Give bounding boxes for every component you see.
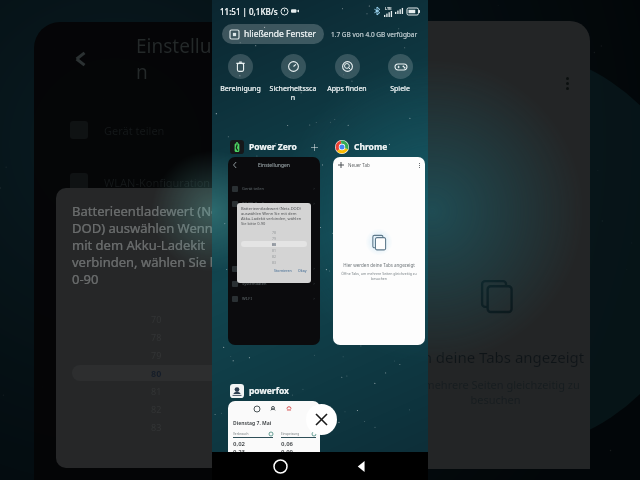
staticText: Batterieentladewert (Netz-DOD) auswählen… <box>72 202 240 288</box>
button[interactable]: Alle schließen <box>306 404 337 435</box>
staticText: m mehrere Seiten gleichzeitig zu besuche… <box>411 377 580 407</box>
button[interactable]: Spiele <box>375 52 425 96</box>
staticText: 82 <box>272 254 277 259</box>
staticText: Stornieren <box>274 268 292 273</box>
staticText: > <box>313 296 316 301</box>
staticText: 0,00 <box>281 448 294 456</box>
staticText: Öffne Tabs, um mehrere Seiten gleichzeit… <box>341 271 417 281</box>
button[interactable]: Zurück <box>347 452 375 480</box>
staticText: Gerät teilen <box>242 186 264 191</box>
button[interactable]: Bereinigung <box>215 52 265 96</box>
staticText: Batterieentladewert (Netz-DOD) auswählen… <box>241 206 307 226</box>
staticText: 83 <box>272 260 277 265</box>
staticText: hließende Fenster <box>244 28 316 40</box>
staticText: den deine Tabs angezeigt <box>405 347 585 367</box>
staticText: Gerät teilen <box>104 123 165 138</box>
staticText: Okay <box>298 268 307 273</box>
staticText: 80 <box>272 242 277 247</box>
staticText: powerfox <box>249 385 290 397</box>
staticText: 1.7 GB von 4.0 GB verfügbar <box>331 30 418 39</box>
staticText: Neuer Tab <box>348 162 370 168</box>
staticText: LTE <box>385 6 392 11</box>
staticText: Dienstag 7. Mai <box>233 420 272 427</box>
staticText: 0,02 <box>233 440 246 448</box>
staticText: Spiele <box>390 84 410 94</box>
button[interactable]: Sicherheitsscan <box>268 52 318 104</box>
button[interactable]: Power Zero <box>228 140 320 345</box>
staticText: 79 <box>151 349 162 361</box>
staticText: WLAN-Konfiguration <box>242 201 281 206</box>
staticText: 81 <box>272 248 277 253</box>
staticText: 79 <box>272 236 277 241</box>
staticText: WI-FI <box>242 296 252 301</box>
button[interactable]: hließende Fenster <box>222 24 324 44</box>
staticText: Einspeisung <box>281 432 300 436</box>
staticText: 83 <box>151 421 162 433</box>
staticText: Apps finden <box>327 84 367 94</box>
button[interactable]: Startseite <box>266 452 294 480</box>
staticText: 11:51 | 0,1KB/s <box>220 6 278 17</box>
button[interactable]: Chrome <box>333 140 425 345</box>
staticText: 0,06 <box>281 440 294 448</box>
staticText: Einstellungen <box>136 33 246 85</box>
staticText: > <box>313 186 316 191</box>
staticText: 0,23 <box>233 448 246 456</box>
button[interactable]: powerfox <box>228 384 320 480</box>
staticText: Stornieren <box>179 450 240 454</box>
staticText: WLAN-Konfiguration <box>104 175 211 190</box>
staticText: Einstellungen <box>258 162 290 169</box>
staticText: 78 <box>151 331 162 343</box>
staticText: Chrome <box>354 141 388 153</box>
staticText: 70 <box>151 313 162 325</box>
staticText: Power Zero <box>249 141 297 153</box>
staticText: 78 <box>272 230 277 235</box>
staticText: Sicherheitsscan <box>268 84 318 102</box>
staticText: 80 <box>151 367 162 379</box>
staticText: > <box>313 281 316 286</box>
staticText: Verbrauch <box>233 432 249 436</box>
staticText: Hier werden deine Tabs angezeigt <box>343 262 415 268</box>
button[interactable]: Apps finden <box>322 52 372 96</box>
staticText: Einheit kWh <box>281 456 298 460</box>
staticText: > <box>313 201 316 206</box>
staticText: 82 <box>151 403 162 415</box>
staticText: Systemdaten <box>242 281 267 286</box>
staticText: Bereinigung <box>220 84 261 94</box>
staticText: > <box>313 266 316 271</box>
